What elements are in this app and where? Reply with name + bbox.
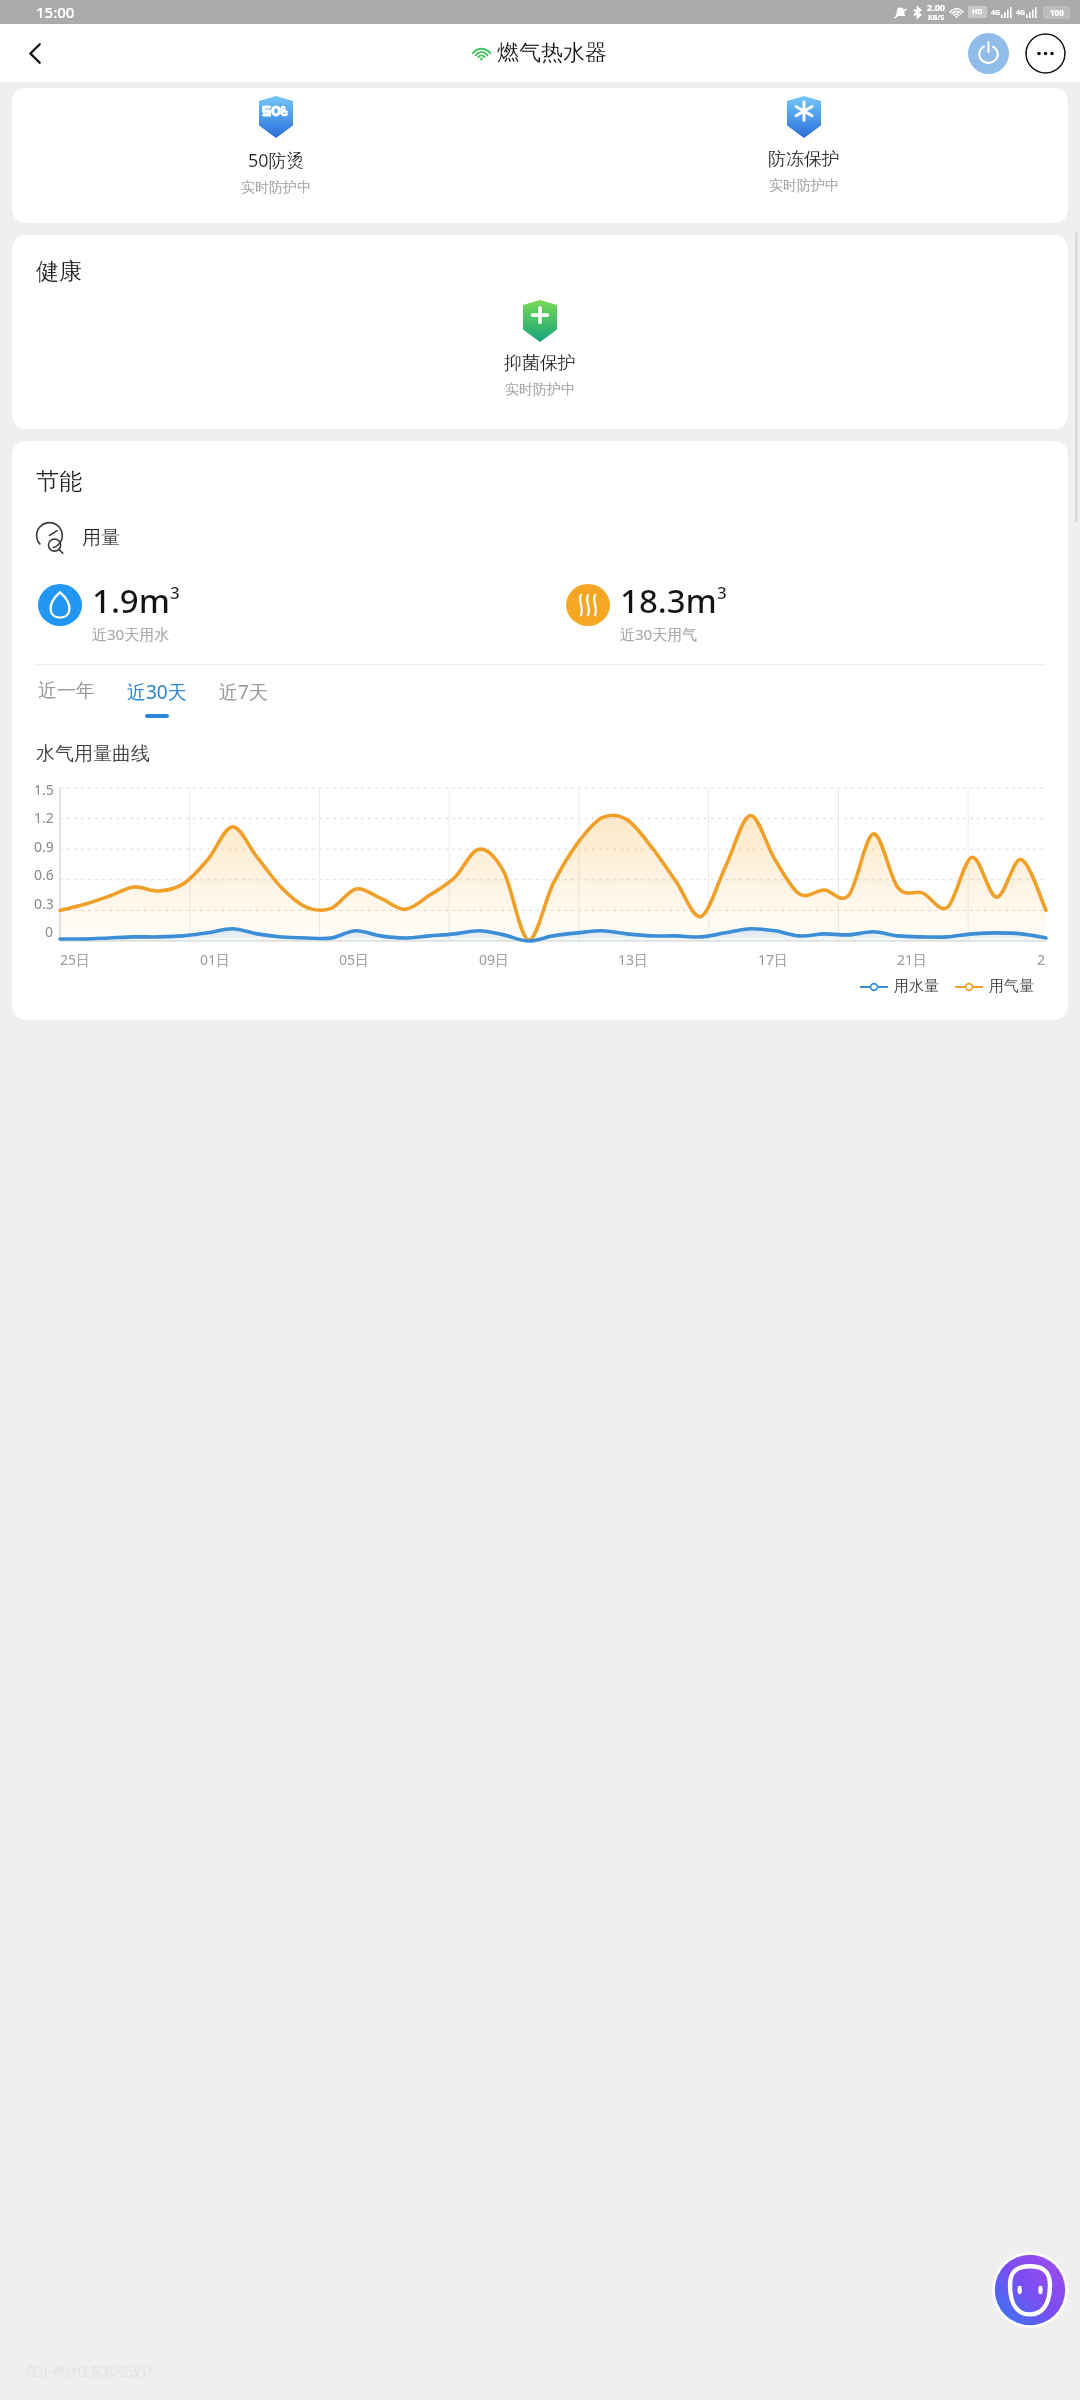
button[interactable]: 近7天 xyxy=(215,679,272,718)
staticText: 0.6 xyxy=(34,865,54,884)
button[interactable]: 返回 xyxy=(12,30,58,76)
staticText: 近30天用气 xyxy=(620,624,698,644)
button[interactable]: 1.9m xyxy=(38,578,540,644)
staticText: 05日 xyxy=(339,950,370,969)
button[interactable]: 抑菌保护 xyxy=(504,296,576,403)
button[interactable]: 18.3m xyxy=(566,578,1068,644)
staticText: 2.00 xyxy=(927,1,945,13)
button[interactable]: 防冻保护 xyxy=(540,92,1068,199)
staticText: 2 xyxy=(1037,950,1046,969)
staticText: 近30天 xyxy=(127,679,187,705)
staticText: 13日 xyxy=(618,950,649,969)
button[interactable]: 智能助手 xyxy=(990,2250,1070,2330)
staticText: 任小帮@任东私宅设计 xyxy=(26,2362,155,2380)
staticText: 抑菌保护 xyxy=(504,352,576,375)
staticText: 用气量 xyxy=(989,977,1034,996)
staticText: 3 xyxy=(170,581,180,604)
staticText: 水气用量曲线 xyxy=(36,742,150,766)
staticText: 近一年 xyxy=(38,679,95,703)
staticText: 1.9m xyxy=(92,578,170,623)
staticText: HD xyxy=(972,7,983,17)
staticText: 0 xyxy=(45,922,54,941)
staticText: 01日 xyxy=(200,950,231,969)
button[interactable]: 更多选项 xyxy=(1025,33,1066,74)
staticText: 0.3 xyxy=(34,894,54,913)
button[interactable]: 电源开关 xyxy=(968,33,1009,74)
staticText: 实时防护中 xyxy=(769,177,839,195)
staticText: 50防烫 xyxy=(248,148,305,173)
staticText: KB/S xyxy=(928,13,945,23)
staticText: 15:00 xyxy=(36,2,75,22)
staticText: 100 xyxy=(1050,7,1064,18)
staticText: 用量 xyxy=(82,526,120,550)
button[interactable]: 用量 xyxy=(36,522,120,554)
button[interactable]: 近30天 xyxy=(123,679,191,718)
staticText: 0.9 xyxy=(34,837,54,856)
staticText: 18.3m xyxy=(620,578,717,623)
button[interactable]: 50防烫 xyxy=(12,92,540,201)
staticText: 实时防护中 xyxy=(241,179,311,197)
staticText: 防冻保护 xyxy=(768,148,840,171)
staticText: 近7天 xyxy=(219,679,268,705)
staticText: 实时防护中 xyxy=(505,381,575,399)
staticText: 09日 xyxy=(479,950,510,969)
staticText: 3 xyxy=(717,581,727,604)
staticText: 1.5 xyxy=(34,780,54,799)
staticText: 燃气热水器 xyxy=(497,39,607,67)
staticText: 近30天用水 xyxy=(92,624,170,644)
staticText: 健康 xyxy=(36,257,82,286)
staticText: 25日 xyxy=(60,950,91,969)
staticText: 节能 xyxy=(36,467,82,496)
staticText: 4G xyxy=(1016,8,1026,18)
staticText: 1.2 xyxy=(34,808,54,827)
button[interactable]: 近一年 xyxy=(34,679,99,716)
staticText: 21日 xyxy=(897,950,928,969)
staticText: 17日 xyxy=(758,950,789,969)
staticText: 4G xyxy=(991,8,1001,18)
staticText: 用水量 xyxy=(894,977,939,996)
